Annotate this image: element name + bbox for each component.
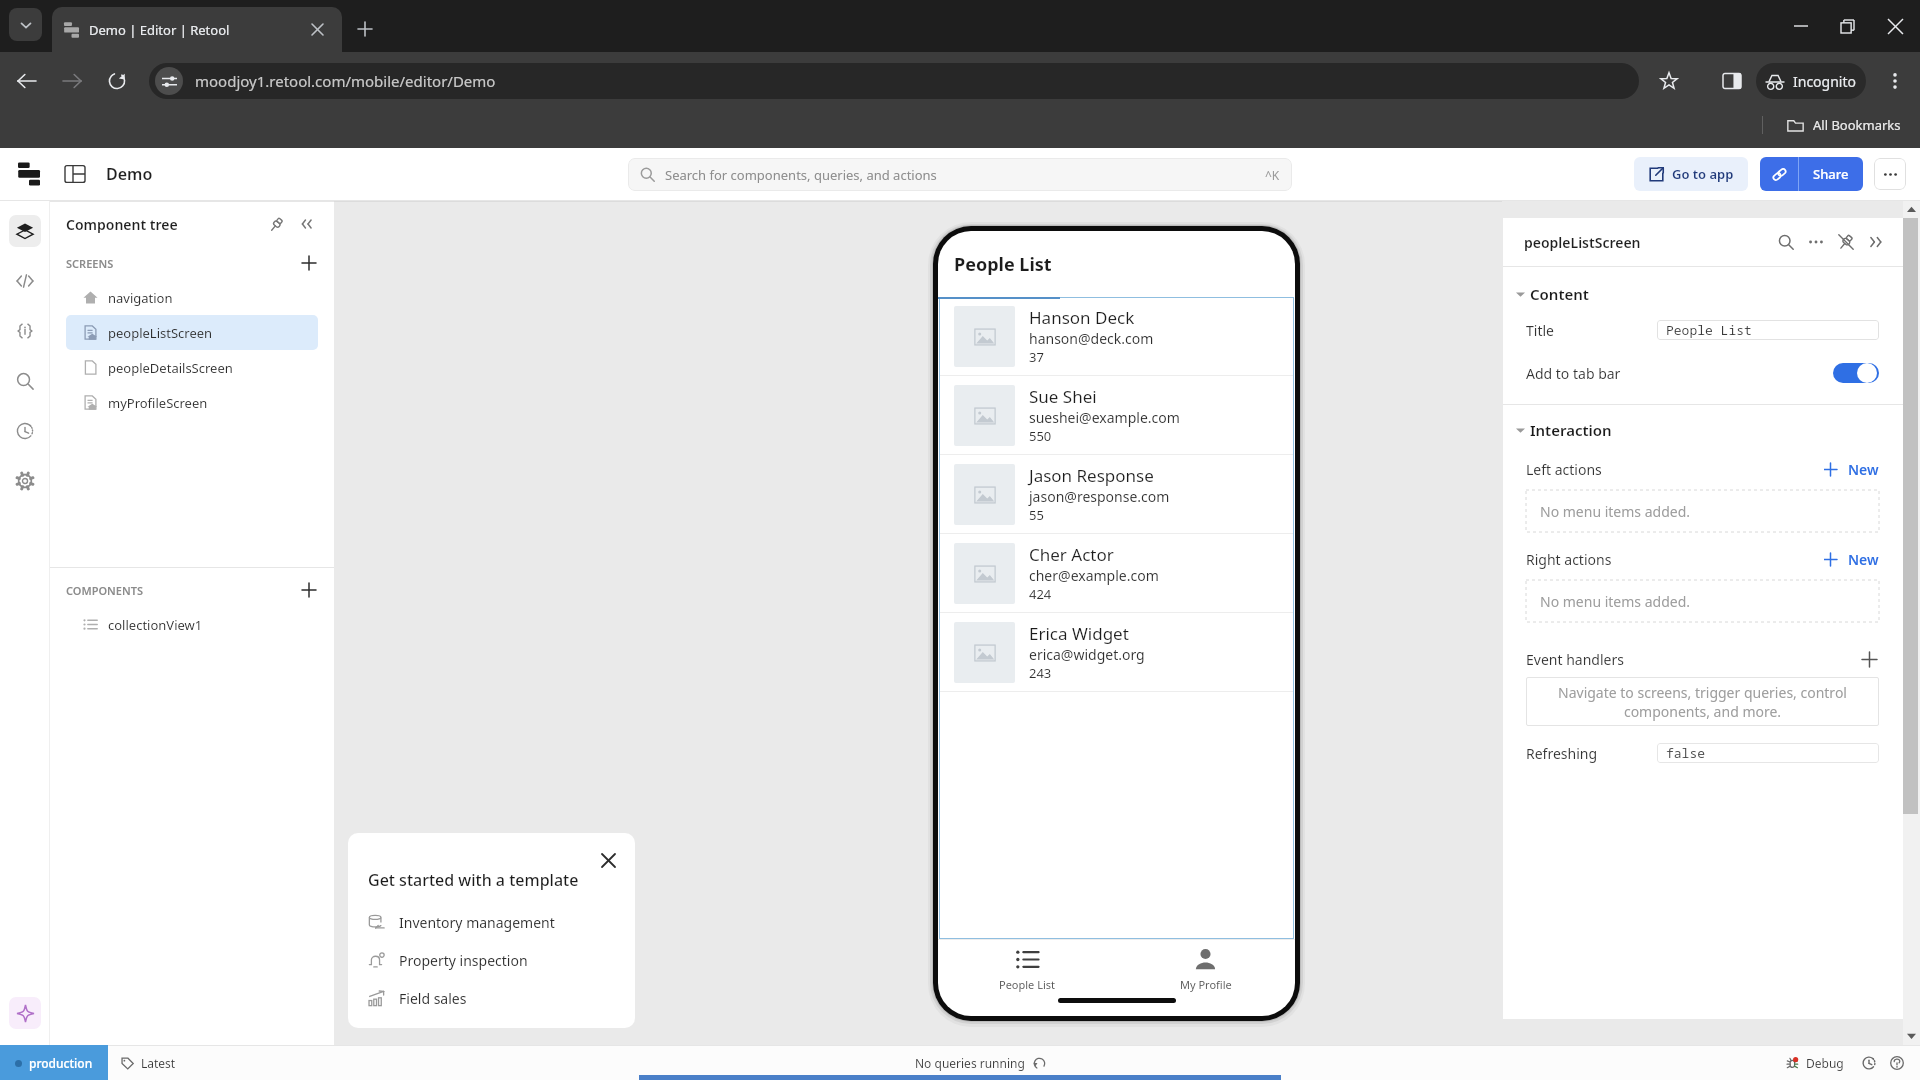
staticText: jason@response.com [1029, 487, 1170, 506]
button[interactable]: Collapse panel [296, 212, 320, 236]
staticText: Jason Response [1029, 464, 1154, 487]
button[interactable]: Cher Actor [939, 534, 1294, 612]
button[interactable]: Maximize [1824, 0, 1870, 52]
button[interactable]: Help [1886, 1052, 1908, 1074]
staticText: myProfileScreen [108, 394, 208, 412]
staticText: peopleDetailsScreen [108, 359, 233, 377]
staticText: peopleListScreen [108, 324, 213, 342]
button[interactable]: Search tabs [9, 8, 42, 41]
button[interactable]: myProfileScreen [66, 385, 318, 420]
button[interactable]: production [0, 1045, 108, 1080]
button[interactable]: Search [1771, 227, 1801, 257]
button[interactable]: No menu items added. [1526, 580, 1879, 622]
button[interactable]: Component tree [9, 215, 41, 247]
staticText: ^K [1265, 167, 1280, 183]
button[interactable]: People List [938, 940, 1116, 992]
staticText: People List [954, 252, 1052, 277]
button[interactable]: Copy link [1760, 157, 1798, 191]
button[interactable]: Sue Shei [939, 376, 1294, 454]
staticText: Event handlers [1526, 650, 1624, 669]
button[interactable]: peopleListScreen [66, 315, 318, 350]
staticText: Share [1813, 165, 1849, 183]
button[interactable]: navigation [66, 280, 318, 315]
staticText: 55 [1029, 506, 1044, 524]
button[interactable]: Minimize [1778, 0, 1824, 52]
button[interactable]: Incognito [1756, 63, 1866, 99]
staticText: Right actions [1526, 550, 1612, 569]
staticText: Field sales [399, 989, 467, 1008]
staticText: Inventory management [399, 913, 555, 932]
button[interactable]: Close [595, 847, 621, 873]
button[interactable]: Property inspection [368, 947, 619, 973]
button[interactable]: Close tab [303, 15, 331, 43]
button[interactable]: State [9, 315, 41, 347]
staticText: No menu items added. [1540, 592, 1691, 611]
button[interactable]: People List [1657, 320, 1879, 340]
button[interactable]: Collapse [1861, 227, 1891, 257]
button[interactable]: Close window [1870, 0, 1920, 52]
button[interactable]: History [9, 415, 41, 447]
button[interactable]: Forward [52, 61, 92, 101]
staticText: Demo [106, 163, 153, 185]
button[interactable]: Search [9, 365, 41, 397]
button[interactable]: false [1657, 743, 1879, 763]
button[interactable]: Toggle panels [60, 159, 90, 189]
button[interactable]: Bookmark [1649, 61, 1689, 101]
button[interactable]: Latest [121, 1055, 176, 1071]
staticText: No menu items added. [1540, 502, 1691, 521]
button[interactable]: New [1824, 460, 1879, 479]
button[interactable]: All Bookmarks [1784, 112, 1904, 138]
staticText: 424 [1029, 585, 1052, 603]
button[interactable]: Go to app [1634, 157, 1748, 191]
button[interactable]: Add component [298, 580, 320, 600]
button[interactable]: Add screen [298, 253, 320, 273]
staticText: 37 [1029, 348, 1044, 366]
button[interactable]: My Profile [1116, 940, 1295, 992]
button[interactable]: Navigate to screens, trigger queries, co… [1526, 677, 1879, 726]
button[interactable]: collectionView1 [66, 607, 318, 642]
button[interactable]: Demo | Editor | Retool [52, 7, 342, 52]
button[interactable]: Side panel [1712, 61, 1752, 101]
button[interactable]: Inventory management [368, 909, 619, 935]
button[interactable]: moodjoy1.retool.com/mobile/editor/Demo [149, 63, 1639, 99]
staticText: No queries running [915, 1055, 1025, 1071]
button[interactable]: Search for components, queries, and acti… [628, 158, 1292, 191]
button[interactable]: Field sales [368, 985, 619, 1011]
staticText: Incognito [1793, 72, 1856, 91]
staticText: Refreshing [1526, 744, 1598, 763]
button[interactable]: More [1875, 61, 1915, 101]
button[interactable]: No menu items added. [1526, 490, 1879, 532]
button[interactable]: Settings [9, 465, 41, 497]
button[interactable]: Jason Response [939, 455, 1294, 533]
button[interactable]: peopleDetailsScreen [66, 350, 318, 385]
button[interactable]: New tab [350, 14, 380, 44]
button[interactable]: Code [9, 265, 41, 297]
button[interactable]: More [1801, 227, 1831, 257]
button[interactable]: Erica Widget [939, 613, 1294, 691]
button[interactable]: Pin panel [264, 212, 288, 236]
staticText: All Bookmarks [1813, 116, 1901, 134]
staticText: Left actions [1526, 460, 1602, 479]
staticText: sueshei@example.com [1029, 408, 1180, 427]
button[interactable]: New [1824, 550, 1879, 569]
button[interactable]: Content [1516, 284, 1903, 304]
button[interactable]: Unpin [1831, 227, 1861, 257]
button[interactable]: Interaction [1516, 420, 1903, 440]
button[interactable]: Retool home [14, 159, 44, 189]
button[interactable]: Add event handler [1859, 649, 1879, 669]
staticText: Property inspection [399, 951, 528, 970]
button[interactable]: Reload [97, 61, 137, 101]
staticText: New [1848, 550, 1879, 569]
button[interactable]: Share [1799, 157, 1863, 191]
button[interactable]: Debug [1786, 1055, 1844, 1071]
button[interactable]: AI assistant [9, 997, 41, 1029]
staticText: Debug [1806, 1055, 1844, 1071]
button[interactable]: Add to tab bar toggle [1833, 363, 1879, 383]
button[interactable]: Back [7, 61, 47, 101]
button[interactable]: Scroll up [1903, 201, 1920, 218]
button[interactable]: Hanson Deck [939, 297, 1294, 375]
button[interactable]: More options [1874, 158, 1906, 190]
button[interactable]: Scroll down [1903, 1028, 1920, 1045]
button[interactable]: History [1858, 1052, 1880, 1074]
staticText: Erica Widget [1029, 622, 1129, 645]
